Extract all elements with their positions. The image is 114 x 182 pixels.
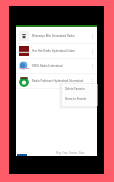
staticText: Hot Hot Radio Hyderabad Islam [32,49,88,53]
button[interactable]: More options [88,74,97,88]
button[interactable]: Bharatiya Mitr Islamabad Radio [16,29,97,44]
button[interactable]: Radio Pakistani Hyderabad Islamabad [16,74,97,89]
staticText: Share to Friends [65,97,87,101]
staticText: Radio Pakistani Hyderabad Islamabad [32,79,88,83]
button[interactable]: More options [88,29,97,43]
button[interactable]: More options [88,59,97,73]
button[interactable]: Delete Favorite [62,84,96,94]
button[interactable]: More options [88,44,97,58]
staticText: DBSS Radio Islamabad [32,64,88,68]
button[interactable]: DBSS Radio Islamabad [16,59,97,74]
button[interactable]: Share to Friends [62,94,96,104]
staticText: Delete Favorite [65,87,85,91]
staticText: Bharatiya Mitr Islamabad Radio [32,34,88,38]
button[interactable]: Hot Hot Radio Hyderabad Islam [16,44,97,59]
staticText: Play Free Games Now [56,151,85,155]
button[interactable]: Advertisement [16,150,97,156]
